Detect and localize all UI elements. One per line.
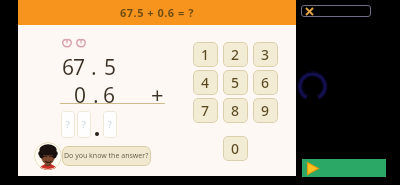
staticText: . bbox=[91, 53, 97, 82]
staticText: 6 bbox=[62, 53, 75, 82]
button[interactable]: 7 bbox=[193, 98, 218, 123]
button[interactable]: Tutor avatar bbox=[34, 142, 62, 170]
staticText: Do you know the answer? bbox=[64, 151, 149, 161]
staticText: 4 bbox=[201, 73, 210, 92]
button[interactable]: 4 bbox=[193, 70, 218, 95]
staticText: 7 bbox=[73, 53, 86, 82]
button[interactable]: 1 bbox=[193, 42, 218, 67]
staticText: 5 bbox=[104, 53, 117, 82]
staticText: 5 bbox=[231, 73, 240, 92]
staticText: 9 bbox=[261, 101, 270, 120]
staticText: ? bbox=[82, 119, 86, 130]
button[interactable]: 6 bbox=[253, 70, 278, 95]
button[interactable]: Close ad bbox=[301, 5, 371, 17]
staticText: 6 bbox=[261, 73, 270, 92]
staticText: 1 bbox=[201, 45, 210, 64]
staticText: 2 bbox=[231, 45, 240, 64]
button[interactable]: ? bbox=[61, 111, 75, 138]
staticText: 0 bbox=[231, 139, 240, 158]
staticText: 3 bbox=[261, 45, 270, 64]
button[interactable]: 9 bbox=[253, 98, 278, 123]
staticText: 0 bbox=[74, 81, 87, 110]
staticText: . bbox=[93, 81, 99, 110]
button[interactable]: 0 bbox=[223, 136, 248, 161]
button[interactable]: ? bbox=[77, 111, 91, 138]
staticText: ? bbox=[108, 119, 112, 130]
staticText: + bbox=[151, 79, 164, 109]
button[interactable]: 2 bbox=[223, 42, 248, 67]
button[interactable]: 8 bbox=[223, 98, 248, 123]
button[interactable]: 5 bbox=[223, 70, 248, 95]
staticText: 6 bbox=[103, 81, 116, 110]
staticText: 8 bbox=[231, 101, 240, 120]
staticText: ? bbox=[66, 119, 70, 130]
button[interactable]: Play bbox=[302, 159, 386, 177]
button[interactable]: 3 bbox=[253, 42, 278, 67]
staticText: 67.5 + 0.6 = ? bbox=[120, 5, 194, 20]
staticText: 7 bbox=[201, 101, 210, 120]
button[interactable]: Do you know the answer? bbox=[62, 146, 151, 166]
button[interactable]: ? bbox=[103, 111, 117, 138]
